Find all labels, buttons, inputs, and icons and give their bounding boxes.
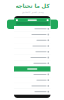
button[interactable]: List item: [14, 49, 50, 55]
staticText: وصف قصير للتطبيق: [21, 11, 43, 14]
staticText: كل ما تحتاجه: [15, 3, 49, 9]
button[interactable]: List item: [14, 38, 50, 43]
button[interactable]: List item: [14, 89, 50, 95]
button[interactable]: List item: [14, 72, 50, 77]
button[interactable]: Section: [14, 66, 50, 72]
button[interactable]: List item: [14, 61, 50, 66]
button[interactable]: List item: [14, 32, 50, 38]
button[interactable]: List item: [14, 43, 50, 49]
button[interactable]: List item: [14, 26, 50, 32]
button[interactable]: List item: [14, 55, 50, 61]
button[interactable]: List item: [14, 83, 50, 89]
button[interactable]: List item: [14, 77, 50, 83]
